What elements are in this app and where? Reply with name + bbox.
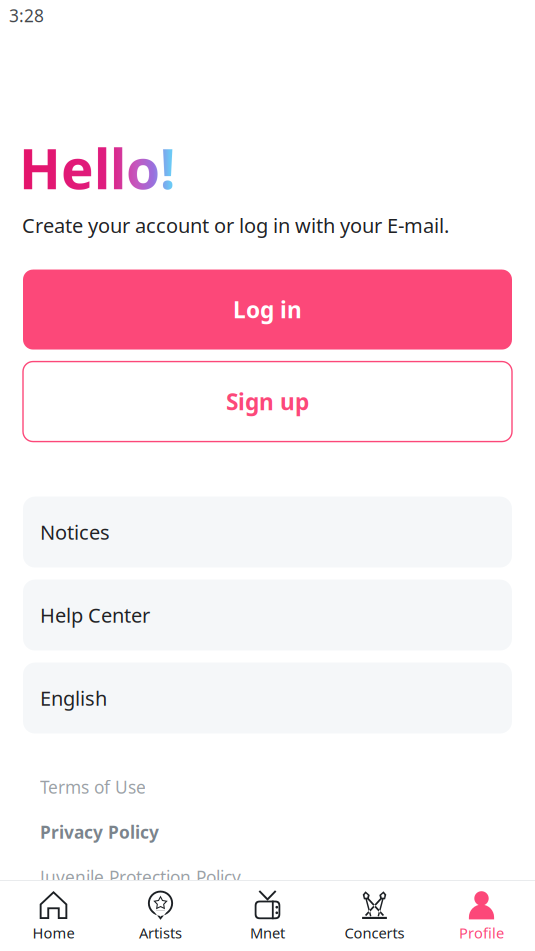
button[interactable]: Home bbox=[0, 881, 107, 951]
staticText: English bbox=[40, 685, 107, 711]
staticText: Log in bbox=[233, 294, 302, 325]
staticText: Home bbox=[32, 923, 74, 942]
button[interactable]: Sign up bbox=[23, 362, 512, 442]
button[interactable]: Notices bbox=[23, 497, 512, 568]
button[interactable]: Profile bbox=[428, 881, 535, 951]
staticText: Notices bbox=[40, 519, 110, 545]
button[interactable]: Juvenile Protection Policy bbox=[40, 855, 535, 900]
staticText: Concerts bbox=[344, 923, 404, 942]
button[interactable]: Terms of Use bbox=[40, 765, 535, 810]
staticText: Profile bbox=[459, 923, 504, 942]
button[interactable]: Help Center bbox=[23, 580, 512, 651]
staticText: Artists bbox=[139, 923, 182, 942]
staticText: Terms of Use bbox=[40, 776, 146, 799]
button[interactable]: Mnet bbox=[214, 881, 321, 951]
button[interactable]: Artists bbox=[107, 881, 214, 951]
button[interactable]: Privacy Policy bbox=[40, 810, 535, 855]
staticText: Sign up bbox=[226, 386, 309, 417]
staticText: 3:28 bbox=[9, 4, 44, 27]
staticText: Create your account or log in with your … bbox=[22, 212, 449, 239]
button[interactable]: English bbox=[23, 663, 512, 734]
button[interactable]: Log in bbox=[23, 270, 512, 350]
staticText: Privacy Policy bbox=[40, 821, 159, 844]
staticText: Mnet bbox=[250, 923, 285, 942]
button[interactable]: Concerts bbox=[321, 881, 428, 951]
staticText: Help Center bbox=[40, 602, 150, 628]
staticText: Juvenile Protection Policy bbox=[40, 866, 241, 889]
